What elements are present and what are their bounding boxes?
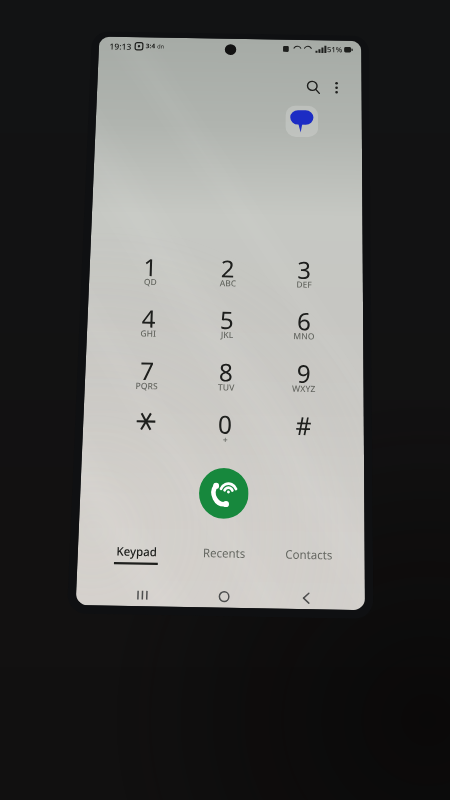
staticText: DEF [296,279,312,291]
staticText: GHI [140,327,156,340]
button[interactable]: Home [183,577,265,608]
staticText: 0 [218,407,232,438]
staticText: ABC [219,277,236,289]
staticText: 1 [143,251,158,280]
button[interactable]: Recent apps [101,576,184,607]
staticText: # [295,408,312,439]
staticText: Keypad [116,543,157,559]
staticText: Recents [203,544,246,561]
staticText: 51% [327,44,342,54]
button[interactable]: Call [198,468,249,519]
staticText: QD [144,276,157,288]
button[interactable]: 0 [187,397,263,450]
staticText: TUV [217,381,235,394]
button[interactable]: 5 [189,293,264,345]
button[interactable]: Chat bubble [285,105,318,137]
button[interactable]: 1 [113,241,188,291]
button[interactable] [107,396,184,448]
staticText: + [223,434,228,446]
button[interactable]: More options [323,75,350,101]
button[interactable]: 2 [190,243,265,293]
staticText: MNO [293,330,315,342]
button[interactable]: Recents [182,538,266,572]
staticText: 19:13 [109,40,132,52]
staticText: 7 [140,353,155,384]
button[interactable]: Keypad [94,537,178,571]
button[interactable]: 8 [188,345,264,397]
button[interactable]: 7 [109,344,185,396]
button[interactable]: Contacts [267,540,351,574]
staticText: WXYZ [291,382,316,395]
button[interactable]: Back [265,579,347,610]
button[interactable]: 6 [267,295,341,346]
button[interactable]: 9 [266,347,341,399]
button[interactable]: # [266,398,341,451]
staticText: 6 [297,304,311,334]
staticText: 2 [220,252,235,281]
staticText: PQRS [135,380,158,392]
staticText: 5 [220,303,234,333]
button[interactable]: 4 [111,292,186,343]
staticText: 9 [297,356,311,387]
button[interactable]: Search [300,74,327,100]
staticText: JKL [220,329,234,341]
staticText: dn [157,43,165,50]
staticText: 4 [141,302,156,332]
staticText: 3:4 [145,42,155,51]
staticText: Contacts [285,546,333,563]
staticText: 8 [219,355,233,385]
button[interactable]: 3 [267,244,341,294]
staticText: 3 [297,253,311,283]
